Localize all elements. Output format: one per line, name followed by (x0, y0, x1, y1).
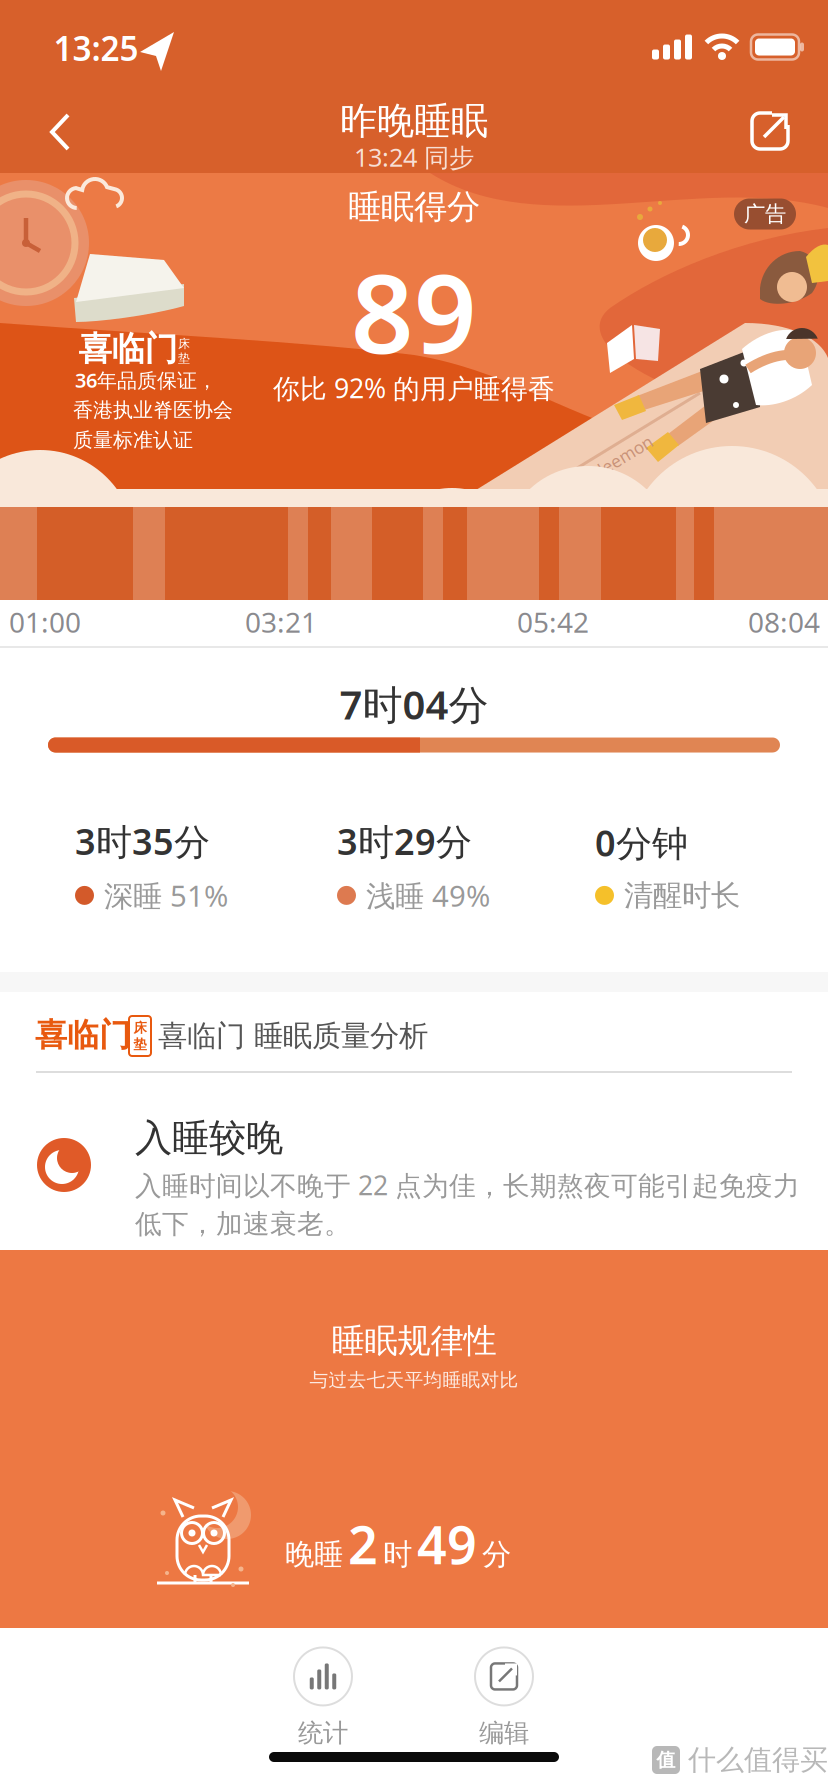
staticText: 入睡较晚 (135, 1115, 283, 1161)
button[interactable]: 统计 (294, 1647, 352, 1748)
staticText: 质量标准认证 (73, 428, 193, 452)
staticText: 深睡 51% (104, 876, 228, 915)
staticText: 喜临门 睡眠质量分析 (158, 1018, 428, 1054)
button[interactable]: 广告 (734, 198, 796, 229)
staticText: 与过去七天平均睡眠对比 (309, 1368, 518, 1391)
button[interactable]: 编辑 (475, 1647, 533, 1748)
staticText: 36年品质保证， (75, 367, 217, 393)
staticText: 时 (383, 1536, 412, 1572)
staticText: 睡眠得分 (348, 186, 480, 227)
staticText: sleemon (587, 445, 656, 468)
staticText: 睡眠规律性 (331, 1320, 496, 1361)
staticText: 89 (351, 238, 477, 384)
staticText: 0分钟 (595, 819, 688, 866)
staticText: 浅睡 49% (366, 876, 490, 915)
staticText: 广告 (744, 201, 786, 227)
staticText: 05:42 (517, 603, 589, 641)
staticText: 49 (417, 1509, 477, 1579)
button[interactable]: Share (744, 105, 796, 157)
staticText: 2 (348, 1509, 378, 1579)
staticText: 分 (482, 1536, 511, 1572)
staticText: 床 垫 (178, 336, 190, 366)
staticText: 3时35分 (75, 817, 210, 865)
staticText: 低下，加速衰老。 (135, 1208, 351, 1240)
staticText: 13:24 同步 (354, 140, 474, 174)
staticText: 昨晚睡眠 (340, 98, 488, 144)
staticText: 入睡时间以不晚于 22 点为佳，长期熬夜可能引起免疫力 (135, 1167, 800, 1203)
staticText: 香港执业脊医协会 (73, 398, 233, 422)
staticText: 喜临门 (78, 328, 177, 369)
staticText: 统计 (298, 1717, 348, 1748)
staticText: 13:25 (53, 26, 138, 70)
staticText: 7时04分 (339, 677, 488, 730)
staticText: 编辑 (479, 1717, 529, 1748)
staticText: 值 (656, 1748, 675, 1771)
staticText: 晚睡 (285, 1536, 343, 1572)
staticText: 床 垫 (133, 1020, 146, 1052)
staticText: 清醒时长 (624, 877, 740, 913)
staticText: 08:04 (748, 603, 820, 641)
staticText: 你比 92% 的用户睡得香 (273, 370, 555, 406)
button[interactable]: Back (42, 107, 90, 157)
staticText: 03:21 (245, 603, 317, 641)
staticText: 01:00 (9, 603, 81, 641)
staticText: 什么值得买 (688, 1743, 828, 1777)
staticText: 3时29分 (337, 817, 472, 865)
staticText: 喜临门 (35, 1015, 131, 1055)
